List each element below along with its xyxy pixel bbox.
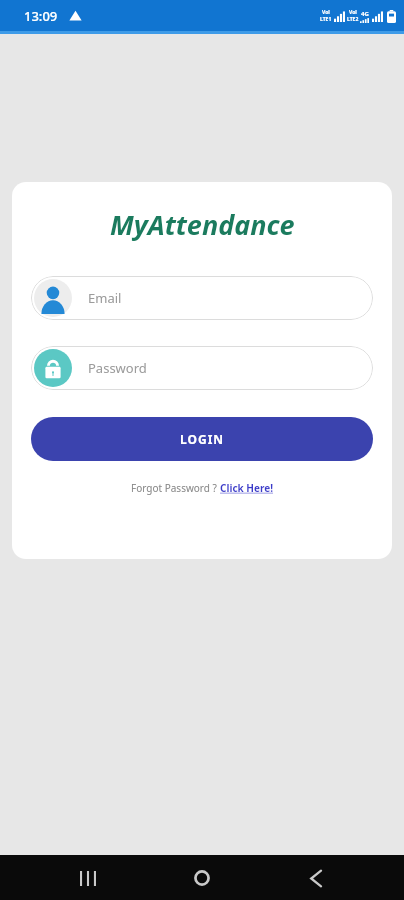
- staticText: Password: [88, 359, 147, 377]
- staticText: Vol: [349, 9, 357, 16]
- button[interactable]: Recent apps: [68, 858, 108, 898]
- staticText: MyAttendance: [110, 206, 295, 243]
- staticText: LTE1: [320, 16, 332, 23]
- staticText: Email: [88, 289, 122, 307]
- staticText: 4G: [361, 10, 369, 18]
- button[interactable]: Home: [182, 858, 222, 898]
- button[interactable]: Email: [31, 276, 373, 320]
- staticText: LTE2: [347, 16, 359, 23]
- staticText: LOGIN: [180, 431, 225, 447]
- button[interactable]: Back: [296, 858, 336, 898]
- staticText: Vol: [322, 9, 330, 16]
- staticText: Click Here!: [220, 481, 274, 495]
- button[interactable]: Password: [31, 346, 373, 390]
- staticText: Forgot Password ?: [131, 481, 220, 495]
- button[interactable]: LOGIN: [31, 417, 373, 461]
- button[interactable]: Click Here!: [220, 481, 274, 495]
- staticText: 13:09: [24, 7, 58, 25]
